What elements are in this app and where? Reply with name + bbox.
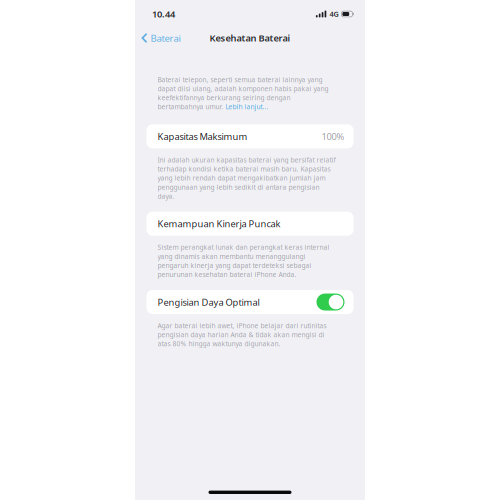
staticText: Baterai telepon, seperti semua baterai l… xyxy=(157,75,328,111)
staticText: 10.44 xyxy=(152,8,175,20)
staticText: Agar baterai lebih awet, iPhone belajar … xyxy=(157,321,326,348)
button[interactable]: Baterai xyxy=(136,29,185,47)
button[interactable]: Kemampuan Kinerja Puncak xyxy=(146,212,353,236)
staticText: Kesehatan Baterai xyxy=(209,32,290,44)
button[interactable]: Pengisian Daya Optimal xyxy=(146,290,353,314)
staticText: Pengisian Daya Optimal xyxy=(157,296,259,308)
staticText: 100% xyxy=(321,130,344,143)
button[interactable]: Kapasitas Maksimum xyxy=(146,124,353,148)
staticText: Ini adalah ukuran kapasitas baterai yang… xyxy=(157,155,335,201)
staticText: 4G xyxy=(329,9,338,19)
staticText: Kemampuan Kinerja Puncak xyxy=(157,217,280,230)
staticText: Sistem perangkat lunak dan perangkat ker… xyxy=(157,243,329,279)
staticText: Kapasitas Maksimum xyxy=(157,130,247,143)
staticText: Baterai xyxy=(150,31,180,45)
